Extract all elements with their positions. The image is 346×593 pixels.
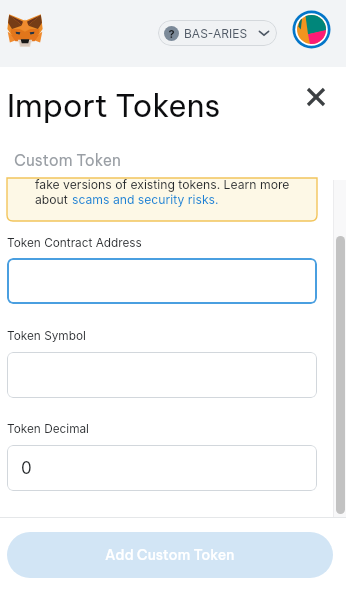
staticText: BAS-ARIES [184,26,248,41]
button[interactable]: Add Custom Token [7,532,333,578]
button[interactable] [7,352,317,398]
staticText: fake versions of existing tokens. Learn … [35,177,290,192]
button[interactable]: 0 [7,445,317,491]
button[interactable]: MetaMask home [7,14,43,48]
staticText: Add Custom Token [105,546,235,564]
button[interactable] [7,258,317,304]
staticText: about [35,192,72,207]
button[interactable]: ? [158,20,277,46]
staticText: ? [168,27,175,40]
staticText: Token Contract Address [7,236,142,250]
staticText: 0 [21,458,32,479]
button[interactable]: Custom Token [14,150,121,170]
button[interactable]: Close [298,79,334,115]
button[interactable]: Account [292,10,331,49]
staticText: Token Symbol [7,329,86,343]
button[interactable]: scams and security risks. [72,192,219,207]
button[interactable]: Scroll [336,236,345,514]
staticText: Import Tokens [7,86,221,125]
staticText: Token Decimal [7,422,89,436]
